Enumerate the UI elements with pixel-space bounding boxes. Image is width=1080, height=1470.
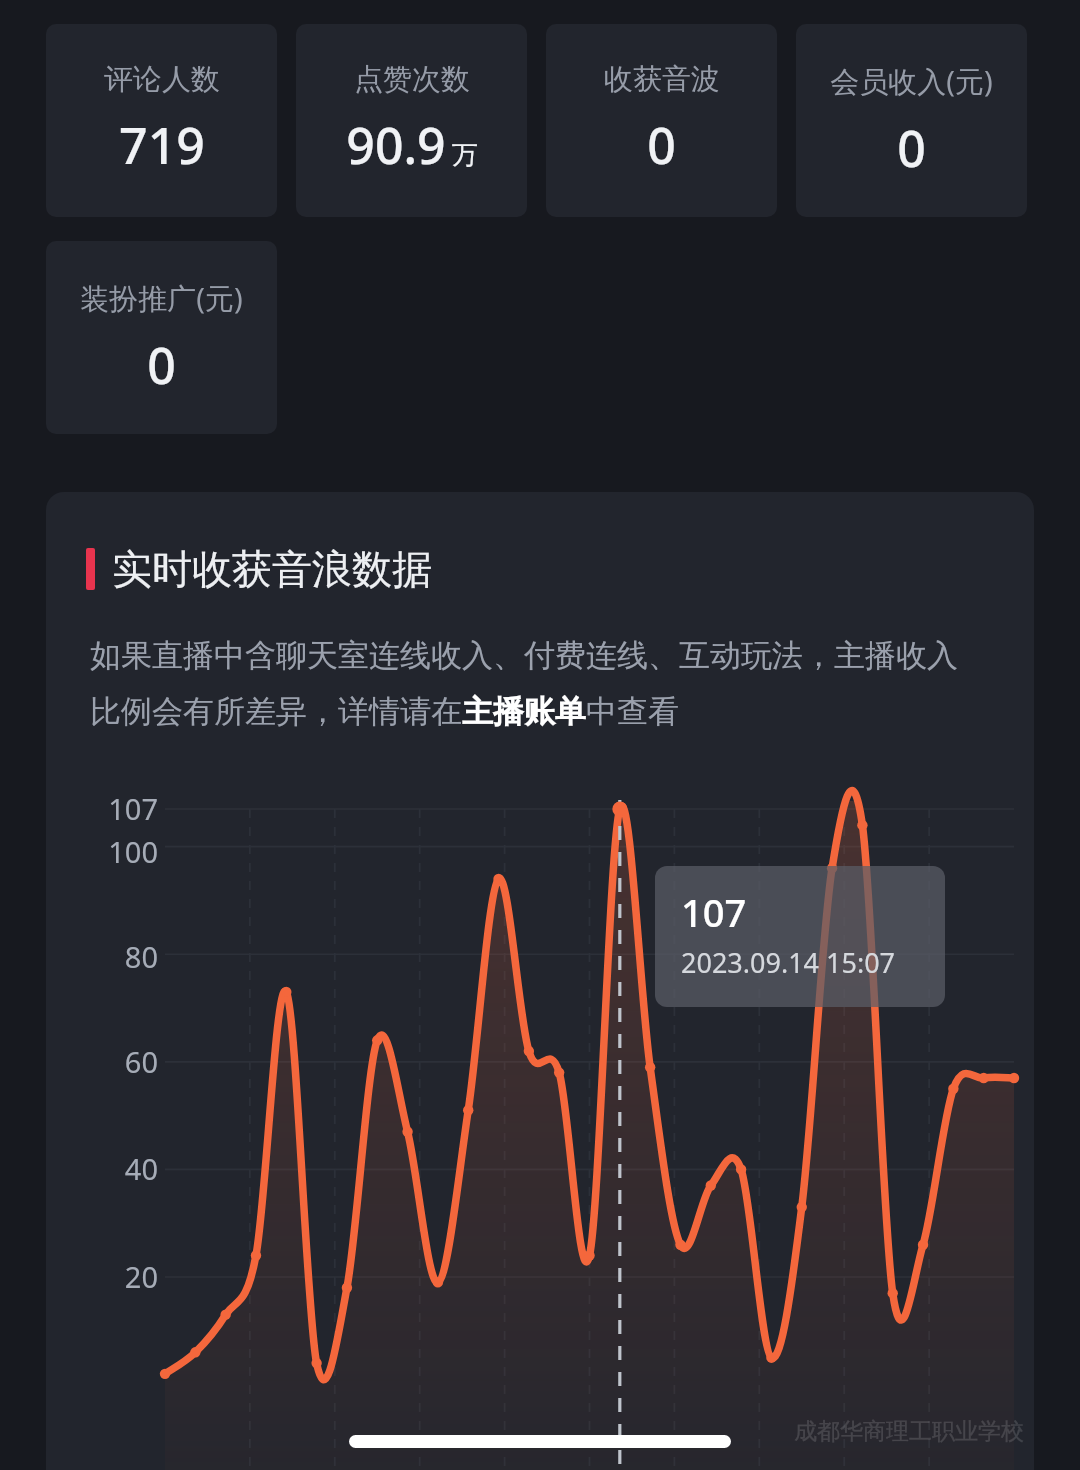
staticText: 20 bbox=[124, 1257, 158, 1296]
staticText: 会员收入(元) bbox=[830, 61, 993, 101]
button[interactable]: 收获音波 bbox=[546, 24, 777, 217]
staticText: 0 bbox=[647, 111, 676, 179]
staticText: 万 bbox=[452, 139, 478, 172]
button[interactable]: 装扮推广(元) bbox=[46, 241, 277, 434]
staticText: 点赞次数 bbox=[354, 61, 470, 98]
staticText: 评论人数 bbox=[104, 61, 220, 98]
staticText: 0 bbox=[147, 331, 176, 399]
staticText: 装扮推广(元) bbox=[80, 278, 243, 318]
staticText: 107 bbox=[681, 886, 747, 938]
staticText: 80 bbox=[124, 937, 158, 976]
staticText: 收获音波 bbox=[604, 61, 720, 98]
button[interactable]: 会员收入(元) bbox=[796, 24, 1027, 217]
other: Home indicator bbox=[349, 1435, 731, 1448]
staticText: 2023.09.14 15:07 bbox=[681, 944, 896, 981]
staticText: 40 bbox=[124, 1149, 158, 1188]
staticText: 成都华商理工职业学校 bbox=[794, 1417, 1024, 1446]
staticText: 719 bbox=[119, 111, 205, 179]
staticText: 0 bbox=[897, 114, 926, 182]
button[interactable]: 评论人数 bbox=[46, 24, 277, 217]
button[interactable]: 点赞次数 bbox=[296, 24, 527, 217]
staticText: 90.9 bbox=[346, 111, 446, 179]
button[interactable]: 107 bbox=[655, 866, 945, 1007]
staticText: 实时收获音浪数据 bbox=[112, 544, 432, 594]
staticText: 107 bbox=[108, 789, 158, 828]
staticText: 100 bbox=[108, 832, 158, 871]
staticText: 如果直播中含聊天室连线收入、付费连线、互动玩法，主播收入比例会有所差异，详情请在… bbox=[90, 636, 984, 731]
staticText: 60 bbox=[124, 1042, 158, 1081]
